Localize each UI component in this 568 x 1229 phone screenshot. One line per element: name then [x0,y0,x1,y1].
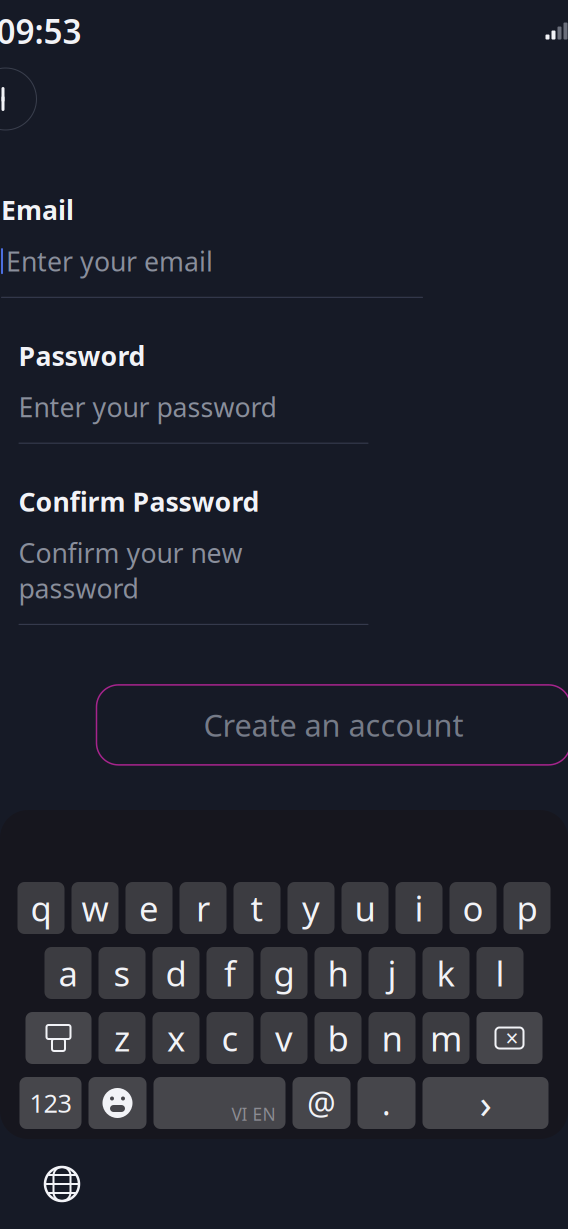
staticText: y [302,885,320,931]
staticText: z [114,1015,130,1061]
button[interactable]: o [449,882,496,934]
staticText: k [436,950,455,996]
button[interactable]: Shift [25,1012,91,1064]
staticText: u [354,885,375,931]
button[interactable]: l [476,947,523,999]
button[interactable]: j [368,947,415,999]
button[interactable]: n [368,1012,415,1064]
staticText: x [167,1015,185,1061]
button[interactable]: u [341,882,388,934]
staticText: f [224,950,236,996]
staticText: › [479,1076,491,1129]
staticText: o [462,885,483,931]
button[interactable]: s [98,947,145,999]
staticText: Confirm your new password [18,535,242,606]
button[interactable]: . [357,1077,415,1129]
staticText: Create an account [203,704,463,745]
button[interactable]: r [179,882,226,934]
staticText: h [327,950,348,996]
staticText: VI EN [231,1102,275,1125]
staticText: . [382,1082,391,1124]
staticText: 123 [29,1086,71,1120]
button[interactable]: b [314,1012,361,1064]
button[interactable]: e [125,882,172,934]
button[interactable]: x [152,1012,199,1064]
staticText: t [250,885,263,931]
staticText: @ [307,1082,336,1124]
button[interactable]: 123 [19,1077,81,1129]
button[interactable]: g [260,947,307,999]
staticText: i [414,885,423,931]
staticText: s [113,950,130,996]
button[interactable]: d [152,947,199,999]
button[interactable]: Back [0,68,36,130]
button[interactable]: a [44,947,91,999]
button[interactable]: c [206,1012,253,1064]
button[interactable]: h [314,947,361,999]
staticText: b [327,1015,348,1061]
button[interactable]: Emoji [88,1077,146,1129]
button[interactable]: p [503,882,550,934]
staticText: d [165,950,186,996]
button[interactable]: z [98,1012,145,1064]
staticText: w [81,885,108,931]
button[interactable]: m [422,1012,469,1064]
button[interactable]: t [233,882,280,934]
button[interactable]: q [17,882,64,934]
staticText: Enter your password [18,389,276,425]
staticText: a [58,950,77,996]
button[interactable]: @ [292,1077,350,1129]
staticText: r [196,885,210,931]
staticText: n [381,1015,402,1061]
staticText: l [495,950,504,996]
button[interactable]: y [287,882,334,934]
staticText: v [275,1015,293,1061]
button[interactable]: Space [153,1077,285,1129]
staticText: Password [18,338,145,373]
button[interactable]: i [395,882,442,934]
button[interactable]: Delete [476,1012,542,1064]
staticText: c [221,1015,238,1061]
staticText: e [139,885,159,931]
button[interactable]: w [71,882,118,934]
staticText: Email [1,192,74,227]
staticText: p [516,885,537,931]
button[interactable]: Create an account [96,685,568,765]
button[interactable]: v [260,1012,307,1064]
staticText: m [430,1015,462,1061]
staticText: j [387,950,396,996]
staticText: Enter your email [6,243,213,279]
button[interactable]: f [206,947,253,999]
button[interactable]: k [422,947,469,999]
button[interactable]: › [422,1077,548,1129]
staticText: Confirm Password [18,484,259,519]
staticText: × [505,1023,518,1053]
staticText: g [273,950,294,996]
staticText: 09:53 [0,9,81,53]
staticText: q [30,885,51,931]
button[interactable]: Change keyboard language [34,1156,90,1212]
